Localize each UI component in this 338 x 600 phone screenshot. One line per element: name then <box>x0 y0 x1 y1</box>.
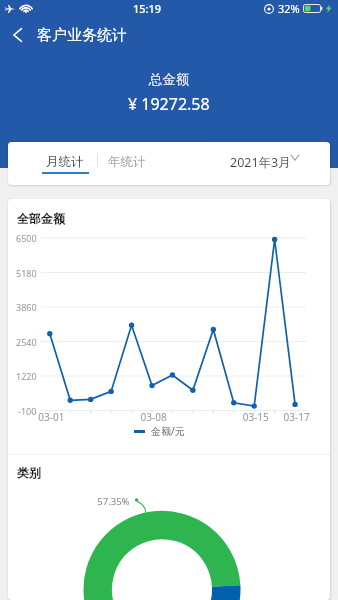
staticText: 全部金额 <box>17 211 65 226</box>
button[interactable]: 2021年3月 <box>224 145 305 180</box>
staticText: 2021年3月 <box>230 154 291 171</box>
staticText: 32% <box>278 1 300 16</box>
staticText: ¥ 19272.58 <box>128 93 210 115</box>
staticText: 客户业务统计 <box>37 26 127 45</box>
button[interactable]: 年统计 <box>98 145 156 179</box>
staticText: 15:19 <box>133 1 162 16</box>
staticText: 年统计 <box>108 154 146 170</box>
staticText: 月统计 <box>46 154 84 170</box>
staticText: 金额/元 <box>151 424 185 438</box>
button[interactable]: 月统计 <box>36 145 94 179</box>
staticText: 类别 <box>17 465 41 480</box>
button[interactable]: Back <box>2 20 32 50</box>
staticText: 总金额 <box>149 71 190 88</box>
